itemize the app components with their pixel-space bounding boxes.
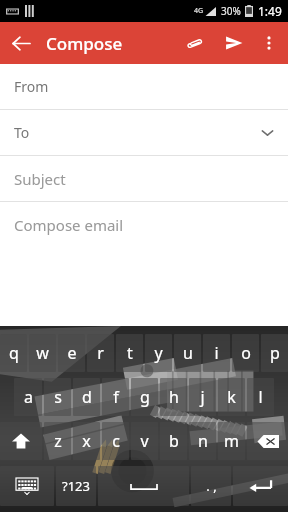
staticText: i (214, 342, 219, 364)
button[interactable]: Compose email (0, 202, 288, 247)
button[interactable]: h (160, 378, 187, 416)
button[interactable]: Send (214, 23, 254, 63)
staticText: From (14, 77, 49, 96)
staticText: p (270, 342, 280, 364)
button[interactable]: Space (98, 466, 189, 506)
staticText: d (82, 386, 92, 408)
staticText: c (112, 430, 120, 452)
button[interactable]: i (203, 334, 230, 372)
button[interactable]: Back (0, 22, 42, 64)
button[interactable]: . , (191, 466, 231, 506)
staticText: . , (206, 477, 217, 495)
button[interactable]: u (174, 334, 201, 372)
button[interactable]: r (87, 334, 114, 372)
button[interactable]: To (0, 110, 288, 155)
staticText: t (127, 342, 133, 364)
staticText: 30% (221, 4, 241, 18)
staticText: s (54, 386, 62, 408)
staticText: b (169, 430, 179, 452)
button[interactable]: c (102, 422, 129, 460)
staticText: a (24, 386, 33, 408)
button[interactable]: a (14, 378, 42, 416)
button[interactable]: ?123 (56, 466, 96, 506)
button[interactable]: Subject (0, 156, 288, 201)
staticText: n (198, 430, 208, 452)
button[interactable]: t (116, 334, 143, 372)
button[interactable]: Shift (0, 422, 42, 460)
button[interactable]: f (102, 378, 129, 416)
staticText: f (113, 386, 119, 408)
button[interactable]: p (261, 334, 288, 372)
staticText: j (200, 386, 205, 408)
button[interactable]: m (218, 422, 245, 460)
staticText: g (140, 386, 150, 408)
button[interactable]: Attach file (174, 23, 214, 63)
staticText: x (82, 430, 91, 452)
staticText: Compose (46, 32, 123, 55)
button[interactable]: o (232, 334, 259, 372)
button[interactable]: n (189, 422, 216, 460)
button[interactable]: v (131, 422, 158, 460)
button[interactable]: Switch keyboard (0, 466, 54, 506)
staticText: m (224, 430, 239, 452)
staticText: Subject (14, 169, 66, 189)
button[interactable]: From (0, 64, 288, 109)
staticText: o (241, 342, 251, 364)
button[interactable]: k (218, 378, 245, 416)
staticText: e (67, 342, 77, 364)
button[interactable]: d (73, 378, 100, 416)
button[interactable]: Backspace (247, 422, 288, 460)
button[interactable]: z (44, 422, 71, 460)
button[interactable]: Enter (233, 466, 288, 506)
button[interactable]: s (44, 378, 71, 416)
button[interactable]: x (73, 422, 100, 460)
staticText: v (140, 430, 149, 452)
staticText: u (183, 342, 193, 364)
button[interactable]: More options (254, 28, 284, 58)
button[interactable]: w (29, 334, 56, 372)
staticText: w (36, 342, 49, 364)
button[interactable]: b (160, 422, 187, 460)
staticText: To (14, 123, 30, 142)
staticText: ?123 (62, 477, 90, 495)
staticText: Compose email (14, 215, 124, 235)
staticText: q (9, 342, 19, 364)
staticText: z (54, 430, 62, 452)
button[interactable]: e (58, 334, 85, 372)
button[interactable]: j (189, 378, 216, 416)
staticText: r (97, 342, 104, 364)
button[interactable]: y (145, 334, 172, 372)
staticText: h (169, 386, 179, 408)
staticText: k (227, 386, 236, 408)
button[interactable]: g (131, 378, 158, 416)
staticText: l (258, 386, 263, 408)
button[interactable]: q (0, 334, 27, 372)
button[interactable]: l (247, 378, 274, 416)
staticText: 1:49 (258, 3, 282, 19)
staticText: y (154, 342, 163, 364)
staticText: 4G (194, 6, 204, 16)
